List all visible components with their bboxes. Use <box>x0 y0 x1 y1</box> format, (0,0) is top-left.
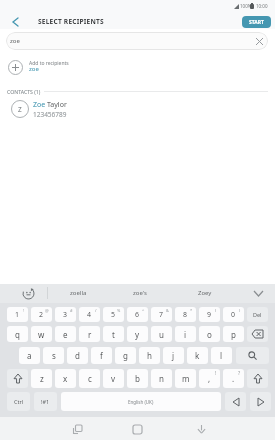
button[interactable]: f <box>91 347 112 364</box>
staticText: 5 <box>111 310 116 320</box>
button[interactable]: 4 <box>79 307 100 322</box>
button[interactable] <box>248 286 268 300</box>
button[interactable]: w <box>31 326 52 342</box>
staticText: 100% <box>240 3 252 9</box>
button[interactable]: o <box>199 326 220 342</box>
staticText: , <box>208 373 211 384</box>
button[interactable]: Del <box>247 307 268 322</box>
staticText: 8 <box>183 310 188 320</box>
staticText: q <box>15 329 20 340</box>
button[interactable] <box>252 34 266 48</box>
staticText: f <box>100 350 103 361</box>
button[interactable]: u <box>151 326 172 342</box>
button[interactable]: m <box>175 369 196 388</box>
button[interactable]: h <box>139 347 160 364</box>
staticText: p <box>231 329 236 340</box>
staticText: a <box>27 350 32 361</box>
staticText: k <box>195 350 200 361</box>
button[interactable] <box>247 326 268 342</box>
staticText: ! <box>23 308 25 313</box>
button[interactable] <box>236 347 269 364</box>
button[interactable]: j <box>163 347 184 364</box>
button[interactable]: START <box>242 16 271 28</box>
staticText: s <box>52 350 56 361</box>
button[interactable]: Zoey <box>175 286 235 300</box>
button[interactable]: !#1 <box>34 392 57 411</box>
button[interactable] <box>129 421 145 437</box>
button[interactable]: x <box>55 369 76 388</box>
staticText: 6 <box>135 310 140 320</box>
button[interactable]: 0 <box>223 307 244 322</box>
staticText: w <box>38 329 45 340</box>
staticText: START <box>249 19 264 26</box>
button[interactable]: 1 <box>7 307 28 322</box>
staticText: 4 <box>87 310 92 320</box>
button[interactable] <box>0 54 275 80</box>
staticText: SELECT RECIPIENTS <box>38 17 104 26</box>
button[interactable]: g <box>115 347 136 364</box>
staticText: 10:00 <box>256 3 268 9</box>
button[interactable]: v <box>103 369 124 388</box>
button[interactable] <box>250 392 271 411</box>
staticText: % <box>117 308 121 313</box>
staticText: m <box>182 373 190 384</box>
staticText: 9 <box>207 310 212 320</box>
button[interactable]: y <box>127 326 148 342</box>
button[interactable]: zoe's <box>110 286 170 300</box>
button[interactable]: a <box>19 347 40 364</box>
staticText: English (UK) <box>128 399 154 405</box>
staticText: t <box>112 329 115 340</box>
button[interactable] <box>69 421 85 437</box>
button[interactable]: 3 <box>55 307 76 322</box>
staticText: !#1 <box>41 398 50 405</box>
button[interactable] <box>193 421 209 437</box>
staticText: zoe <box>10 37 20 45</box>
staticText: 2 <box>39 310 44 320</box>
button[interactable]: 2 <box>31 307 52 322</box>
button[interactable]: 9 <box>199 307 220 322</box>
button[interactable]: t <box>103 326 124 342</box>
button[interactable]: zoella <box>48 286 108 300</box>
button[interactable]: e <box>55 326 76 342</box>
button[interactable] <box>0 96 275 122</box>
staticText: h <box>147 350 152 361</box>
staticText: ( <box>215 308 217 313</box>
button[interactable]: k <box>187 347 208 364</box>
button[interactable]: l <box>211 347 232 364</box>
button[interactable]: English (UK) <box>61 392 221 411</box>
staticText: ! <box>215 370 217 377</box>
button[interactable]: p <box>223 326 244 342</box>
button[interactable]: 6 <box>127 307 148 322</box>
button[interactable] <box>20 285 36 301</box>
button[interactable] <box>9 15 22 28</box>
staticText: Z <box>18 105 22 114</box>
button[interactable]: n <box>151 369 172 388</box>
button[interactable]: , <box>199 369 220 388</box>
button[interactable]: 7 <box>151 307 172 322</box>
staticText: b <box>135 373 140 384</box>
staticText: . <box>232 373 235 384</box>
button[interactable] <box>225 392 246 411</box>
button[interactable]: r <box>79 326 100 342</box>
button[interactable]: q <box>7 326 28 342</box>
staticText: 123456789 <box>33 110 67 119</box>
button[interactable] <box>247 369 268 388</box>
button[interactable]: 5 <box>103 307 124 322</box>
staticText: 1 <box>15 310 20 320</box>
staticText: u <box>159 329 164 340</box>
button[interactable]: z <box>31 369 52 388</box>
button[interactable]: . <box>223 369 244 388</box>
staticText: e <box>63 329 68 340</box>
staticText: i <box>184 329 187 340</box>
button[interactable]: 8 <box>175 307 196 322</box>
button[interactable]: s <box>43 347 64 364</box>
staticText: Zoey <box>198 289 212 297</box>
staticText: d <box>75 350 80 361</box>
button[interactable]: b <box>127 369 148 388</box>
staticText: v <box>111 373 116 384</box>
button[interactable]: i <box>175 326 196 342</box>
button[interactable]: Ctrl <box>7 392 30 411</box>
button[interactable]: d <box>67 347 88 364</box>
button[interactable] <box>7 369 28 388</box>
button[interactable]: c <box>79 369 100 388</box>
